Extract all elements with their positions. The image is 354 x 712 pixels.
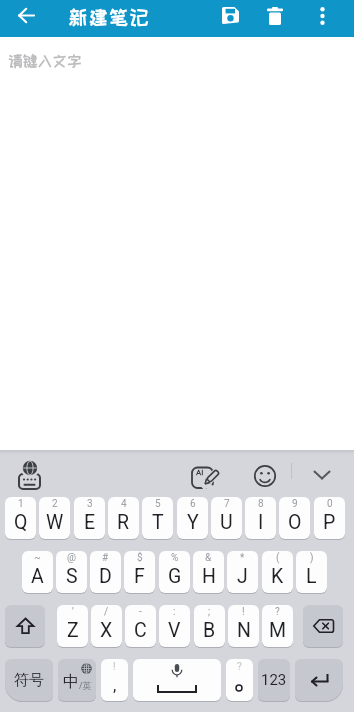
button[interactable] xyxy=(304,0,340,34)
button[interactable]: 4 xyxy=(108,497,139,539)
staticText: O xyxy=(288,511,302,534)
button[interactable]: ~ xyxy=(22,551,53,593)
staticText: A xyxy=(31,565,44,588)
button[interactable] xyxy=(133,659,221,701)
staticText: 5 xyxy=(155,498,161,510)
button[interactable]: ' xyxy=(57,605,88,647)
button[interactable]: 请键入文字 xyxy=(0,37,354,450)
staticText: F xyxy=(134,565,145,588)
staticText: /英 xyxy=(79,679,92,691)
button[interactable]: 5 xyxy=(142,497,173,539)
button[interactable]: @ xyxy=(56,551,87,593)
staticText: J xyxy=(237,565,248,588)
staticText: 123 xyxy=(261,671,287,689)
staticText: ? xyxy=(237,661,242,673)
button[interactable]: ( xyxy=(262,551,293,593)
button[interactable] xyxy=(295,659,343,701)
staticText: E xyxy=(84,511,96,534)
staticText: U xyxy=(220,511,233,534)
staticText: N xyxy=(237,619,251,642)
button[interactable]: 7 xyxy=(211,497,242,539)
button[interactable]: 9 xyxy=(279,497,310,539)
button[interactable]: % xyxy=(159,551,190,593)
staticText: K xyxy=(271,565,284,588)
staticText: T xyxy=(152,511,164,534)
button[interactable] xyxy=(305,456,339,494)
button[interactable]: * xyxy=(227,551,258,593)
staticText: % xyxy=(171,552,179,564)
staticText: : xyxy=(173,606,176,618)
button[interactable] xyxy=(5,605,45,647)
staticText: L xyxy=(306,565,317,588)
button[interactable]: ? xyxy=(262,605,293,647)
staticText: ? xyxy=(275,606,280,618)
button[interactable] xyxy=(246,456,284,494)
staticText: ! xyxy=(113,661,116,673)
button[interactable]: ? xyxy=(226,659,253,701)
staticText: M xyxy=(269,619,287,642)
staticText: 8 xyxy=(258,498,264,510)
button[interactable]: ! xyxy=(101,659,128,701)
button[interactable]: 2 xyxy=(39,497,70,539)
staticText: W xyxy=(46,511,64,534)
staticText: 符号 xyxy=(14,671,44,690)
staticText: ~ xyxy=(34,552,41,564)
staticText: - xyxy=(139,606,142,618)
button[interactable] xyxy=(303,605,343,647)
button[interactable] xyxy=(10,456,50,494)
staticText: 7 xyxy=(224,498,230,510)
staticText: , xyxy=(113,675,117,695)
staticText: AI xyxy=(196,468,204,477)
staticText: 新建笔记 xyxy=(68,7,151,28)
staticText: ; xyxy=(208,606,211,618)
staticText: R xyxy=(117,511,130,534)
button[interactable] xyxy=(211,0,249,34)
button[interactable]: 6 xyxy=(177,497,208,539)
button[interactable] xyxy=(256,0,294,34)
button[interactable]: - xyxy=(125,605,156,647)
staticText: G xyxy=(168,565,182,588)
staticText: ) xyxy=(310,552,314,564)
staticText: Y xyxy=(187,511,199,534)
button[interactable]: # xyxy=(90,551,121,593)
button[interactable]: $ xyxy=(124,551,155,593)
staticText: I xyxy=(258,511,264,534)
button[interactable]: & xyxy=(193,551,224,593)
button[interactable]: 1 xyxy=(5,497,36,539)
staticText: P xyxy=(323,511,336,534)
staticText: B xyxy=(203,619,216,642)
button[interactable]: AI xyxy=(186,456,224,494)
button[interactable]: / xyxy=(91,605,122,647)
staticText: # xyxy=(102,552,109,564)
staticText: D xyxy=(99,565,112,588)
staticText: H xyxy=(202,565,216,588)
staticText: $ xyxy=(137,552,143,564)
staticText: V xyxy=(168,619,181,642)
staticText: X xyxy=(100,619,113,642)
button[interactable]: ) xyxy=(296,551,327,593)
staticText: Q xyxy=(14,511,28,534)
staticText: 中 xyxy=(63,672,79,692)
button[interactable]: 8 xyxy=(245,497,276,539)
staticText: ' xyxy=(72,606,74,618)
staticText: 1 xyxy=(18,498,24,510)
staticText: C xyxy=(134,619,147,642)
button[interactable]: ; xyxy=(194,605,225,647)
staticText: @ xyxy=(67,552,76,564)
staticText: 9 xyxy=(292,498,298,510)
staticText: 6 xyxy=(190,498,196,510)
button[interactable]: 0 xyxy=(314,497,345,539)
button[interactable] xyxy=(8,0,44,34)
button[interactable]: 符号 xyxy=(5,659,53,701)
staticText: 请键入文字 xyxy=(8,53,82,69)
staticText: & xyxy=(205,552,212,564)
button[interactable]: ! xyxy=(228,605,259,647)
staticText: S xyxy=(66,565,78,588)
button[interactable]: 中 xyxy=(58,659,96,701)
staticText: ! xyxy=(242,606,245,618)
button[interactable]: 123 xyxy=(258,659,290,701)
button[interactable]: 3 xyxy=(74,497,105,539)
button[interactable]: : xyxy=(159,605,190,647)
staticText: / xyxy=(104,606,109,618)
staticText: 0 xyxy=(327,498,333,510)
